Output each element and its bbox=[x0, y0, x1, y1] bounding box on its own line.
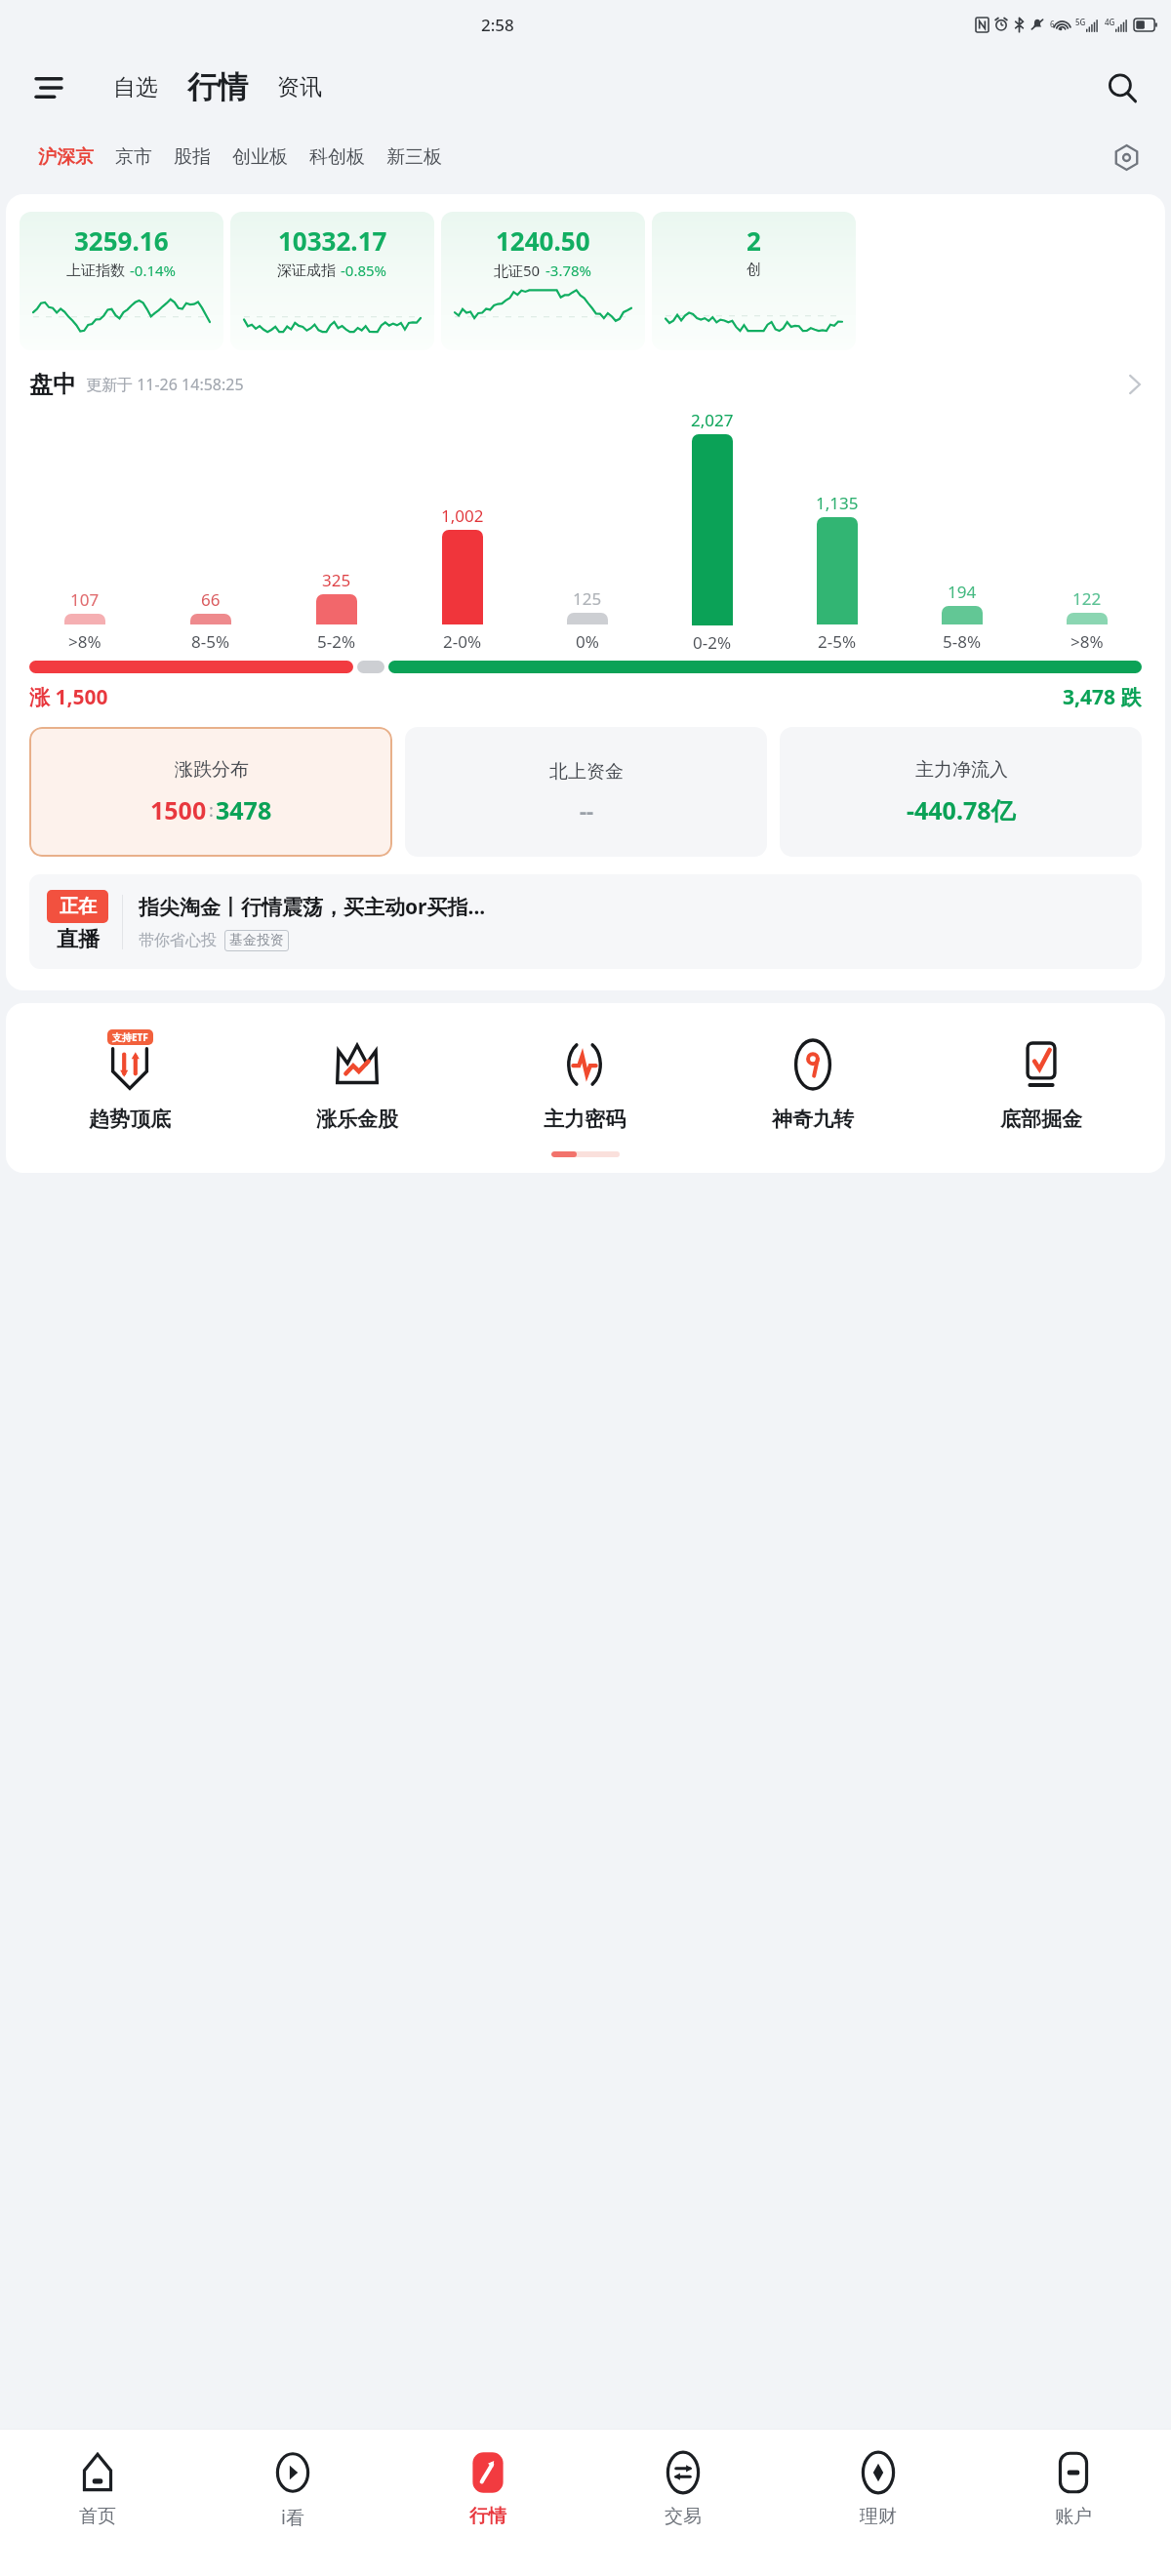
staticText: 2,027 bbox=[691, 409, 734, 431]
button[interactable]: 行情 bbox=[390, 2430, 585, 2576]
staticText: 5G bbox=[1075, 17, 1086, 27]
staticText: 66 bbox=[201, 588, 221, 611]
staticText: 3478 bbox=[216, 793, 272, 826]
staticText: 涨 1,500 bbox=[29, 683, 108, 711]
button[interactable]: 新三板 bbox=[376, 140, 453, 175]
button[interactable]: 10332.17 bbox=[230, 212, 434, 350]
button[interactable]: 创业板 bbox=[222, 140, 299, 175]
button[interactable]: 107 bbox=[21, 588, 147, 653]
button[interactable]: 首页 bbox=[0, 2430, 195, 2576]
staticText: 1,135 bbox=[816, 492, 859, 514]
button[interactable]: 1240.50 bbox=[441, 212, 645, 350]
staticText: 神奇九转 bbox=[772, 1107, 854, 1132]
staticText: 北证50 bbox=[494, 261, 541, 280]
button[interactable]: 行情 bbox=[180, 66, 256, 108]
staticText: 2:58 bbox=[481, 14, 514, 36]
staticText: 1240.50 bbox=[496, 223, 590, 258]
staticText: 194 bbox=[948, 581, 977, 603]
staticText: 创业板 bbox=[232, 145, 288, 169]
button[interactable]: 京市 bbox=[104, 140, 163, 175]
staticText: 新三板 bbox=[386, 145, 442, 169]
staticText: -0.14% bbox=[130, 261, 177, 280]
button[interactable]: i看 bbox=[195, 2430, 390, 2576]
staticText: 更新于 11-26 14:58:25 bbox=[86, 374, 244, 395]
button[interactable]: 1,002 bbox=[399, 504, 525, 653]
staticText: 5-8% bbox=[943, 630, 982, 653]
button[interactable]: 194 bbox=[900, 581, 1025, 653]
staticText: 1500 bbox=[150, 793, 207, 826]
staticText: 创 bbox=[747, 261, 761, 279]
staticText: 盘中 bbox=[29, 370, 76, 399]
staticText: 主力净流入 bbox=[915, 758, 1008, 782]
staticText: 1,002 bbox=[441, 504, 484, 527]
staticText: 资讯 bbox=[277, 73, 322, 101]
staticText: 涨乐金股 bbox=[316, 1107, 398, 1132]
staticText: 行情 bbox=[469, 2505, 506, 2528]
staticText: 交易 bbox=[665, 2505, 702, 2528]
button[interactable]: 沪深京 bbox=[27, 140, 104, 175]
staticText: 趋势顶底 bbox=[89, 1107, 171, 1132]
button[interactable]: 325 bbox=[273, 569, 399, 653]
staticText: 支持ETF bbox=[112, 1030, 148, 1044]
staticText: 科创板 bbox=[309, 145, 365, 169]
staticText: 6 bbox=[1050, 19, 1055, 29]
button[interactable]: 涨跌分布 bbox=[29, 727, 392, 857]
staticText: -3.78% bbox=[545, 261, 592, 280]
button[interactable]: 122 bbox=[1025, 587, 1150, 653]
staticText: i看 bbox=[281, 2505, 304, 2530]
staticText: 底部掘金 bbox=[1000, 1107, 1082, 1132]
staticText: >8% bbox=[68, 630, 101, 653]
staticText: 行情 bbox=[187, 68, 248, 106]
staticText: 3259.16 bbox=[74, 223, 169, 258]
button[interactable]: 账户 bbox=[976, 2430, 1171, 2576]
staticText: 0% bbox=[576, 630, 599, 653]
staticText: 涨跌分布 bbox=[175, 758, 249, 782]
button[interactable]: 主力密码 bbox=[470, 1028, 699, 1132]
staticText: 107 bbox=[70, 588, 100, 611]
staticText: 京市 bbox=[115, 145, 152, 169]
button[interactable]: 北上资金 bbox=[405, 727, 767, 857]
staticText: -- bbox=[580, 795, 594, 825]
button[interactable]: 理财 bbox=[781, 2430, 976, 2576]
button[interactable]: Menu bbox=[23, 62, 74, 113]
staticText: >8% bbox=[1070, 630, 1104, 653]
staticText: 指尖淘金丨行情震荡，买主动or买指... bbox=[139, 893, 486, 921]
button[interactable]: 交易 bbox=[585, 2430, 781, 2576]
staticText: 首页 bbox=[79, 2505, 116, 2528]
staticText: 125 bbox=[573, 587, 602, 610]
button[interactable]: 66 bbox=[147, 588, 273, 653]
button[interactable]: 2,027 bbox=[650, 409, 775, 653]
button[interactable]: 股指 bbox=[163, 140, 222, 175]
button[interactable]: 神奇九转 bbox=[699, 1028, 927, 1132]
staticText: 2-5% bbox=[818, 630, 857, 653]
button[interactable]: 1,135 bbox=[775, 492, 900, 653]
button[interactable]: 支持ETF bbox=[16, 1028, 243, 1132]
staticText: 122 bbox=[1072, 587, 1102, 610]
staticText: 基金投资 bbox=[229, 932, 284, 949]
button[interactable]: 盘中 bbox=[6, 370, 1165, 399]
button[interactable]: 主力净流入 bbox=[780, 727, 1142, 857]
button[interactable]: 科创板 bbox=[299, 140, 376, 175]
staticText: 北上资金 bbox=[549, 760, 624, 784]
staticText: 上证指数 bbox=[66, 262, 125, 280]
staticText: 理财 bbox=[860, 2505, 897, 2528]
staticText: 3,478 跌 bbox=[1063, 683, 1142, 711]
button[interactable]: Settings bbox=[1103, 134, 1150, 181]
button[interactable]: 3259.16 bbox=[20, 212, 223, 350]
staticText: 2-0% bbox=[443, 630, 482, 653]
button[interactable]: 125 bbox=[525, 587, 650, 653]
staticText: 5-2% bbox=[317, 630, 356, 653]
button[interactable]: Search bbox=[1097, 62, 1148, 113]
staticText: 自选 bbox=[113, 73, 158, 101]
staticText: 主力密码 bbox=[544, 1107, 626, 1132]
button[interactable]: 正在 bbox=[29, 874, 1142, 969]
button[interactable]: 底部掘金 bbox=[927, 1028, 1155, 1132]
button[interactable]: 涨乐金股 bbox=[243, 1028, 470, 1132]
staticText: : bbox=[209, 798, 214, 823]
button[interactable]: 资讯 bbox=[267, 67, 332, 107]
button[interactable]: 2 bbox=[652, 212, 856, 350]
button[interactable]: 自选 bbox=[103, 67, 168, 107]
staticText: 325 bbox=[322, 569, 351, 591]
staticText: 账户 bbox=[1055, 2505, 1092, 2528]
staticText: 4G bbox=[1105, 17, 1115, 27]
